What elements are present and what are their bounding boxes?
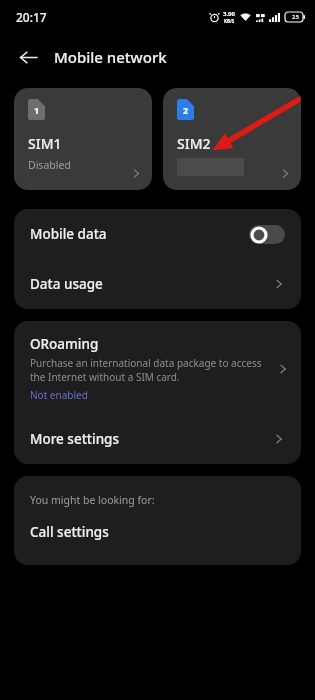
staticText: Mobile data (30, 225, 249, 243)
staticText: 3.00 (223, 10, 235, 18)
button[interactable]: ORoaming (14, 321, 301, 414)
button[interactable]: More settings (14, 414, 301, 464)
staticText: 25 (292, 13, 299, 21)
button[interactable]: 2 (163, 88, 301, 190)
staticText: ORoaming (30, 335, 99, 353)
staticText: Disabled (28, 158, 71, 172)
button[interactable]: Back (8, 37, 48, 77)
staticText: You might be looking for: (30, 493, 155, 507)
button[interactable]: Mobile data toggle (249, 225, 285, 244)
staticText: SIM1 (28, 134, 62, 153)
staticText: 1 (34, 104, 40, 116)
button[interactable]: Data usage (14, 259, 301, 309)
staticText: Purchase an international data package t… (30, 356, 271, 384)
staticText: 20:17 (16, 9, 47, 25)
staticText: Data usage (30, 275, 273, 293)
staticText: Not enabled (30, 388, 88, 402)
button[interactable]: Mobile data (14, 209, 301, 259)
staticText: Call settings (30, 523, 109, 541)
staticText: 2 (183, 104, 189, 116)
staticText: Mobile network (54, 47, 167, 67)
staticText: More settings (30, 430, 273, 448)
button[interactable]: Call settings (14, 523, 301, 543)
staticText: SIM2 (177, 134, 211, 153)
staticText: KB/S (224, 18, 235, 24)
button[interactable]: 1 (14, 88, 152, 190)
